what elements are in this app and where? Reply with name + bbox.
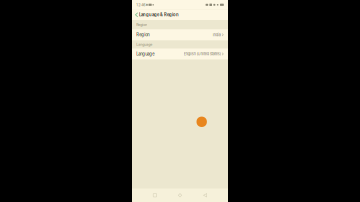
button[interactable]: Region [132,29,228,40]
staticText: Language [136,42,152,47]
staticText: Region [136,22,147,27]
button[interactable]: Compose [196,117,207,127]
button[interactable]: Back [203,188,207,202]
staticText: 12:46 [136,2,145,7]
button[interactable]: Back [134,10,139,20]
staticText: English (United States) [184,52,221,56]
staticText: India [213,33,221,37]
staticText: Language [136,51,154,56]
staticText: Region [136,32,149,37]
staticText: Language & Region [139,12,179,17]
button[interactable]: Language [132,48,228,59]
button[interactable]: Recent apps [153,188,157,202]
button[interactable]: Home [178,188,182,202]
